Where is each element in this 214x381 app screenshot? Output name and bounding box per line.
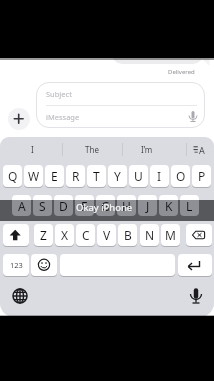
button[interactable] [8, 108, 30, 130]
button[interactable]: U [129, 165, 148, 187]
button[interactable]: P [192, 165, 211, 187]
staticText: Z [40, 227, 47, 243]
button[interactable]: Y [108, 165, 127, 187]
staticText: T [93, 168, 100, 184]
button[interactable] [31, 254, 57, 276]
staticText: G [101, 198, 110, 214]
button[interactable]: Q [3, 165, 22, 187]
button[interactable] [138, 195, 157, 217]
button[interactable] [60, 254, 175, 276]
button[interactable]: I [2, 140, 62, 159]
staticText: W [28, 168, 40, 184]
staticText: I [157, 168, 162, 184]
staticText: U [134, 168, 143, 184]
staticText: I’m [141, 144, 153, 155]
staticText: S [39, 198, 46, 214]
staticText: R [72, 168, 80, 184]
button[interactable] [183, 140, 211, 159]
staticText: Delivered [168, 68, 195, 76]
staticText: Okay iPhone [76, 201, 133, 214]
staticText: B [124, 227, 132, 243]
button[interactable]: Z [34, 224, 53, 246]
button[interactable] [12, 195, 31, 217]
staticText: O [176, 168, 186, 184]
staticText: H [122, 198, 131, 214]
button[interactable]: M [161, 224, 180, 246]
button[interactable]: X [55, 224, 74, 246]
staticText: Subject [46, 89, 72, 99]
button[interactable]: E [45, 165, 64, 187]
staticText: 123 [10, 260, 23, 270]
button[interactable] [178, 254, 212, 276]
button[interactable]: N [140, 224, 159, 246]
staticText: J [146, 198, 150, 214]
button[interactable]: T [87, 165, 106, 187]
button[interactable]: C [76, 224, 95, 246]
staticText: X [61, 227, 69, 243]
button[interactable] [33, 195, 52, 217]
button[interactable] [186, 224, 212, 246]
staticText: A [199, 144, 205, 156]
button[interactable] [75, 195, 94, 217]
staticText: Q [8, 168, 18, 184]
button[interactable] [54, 195, 73, 217]
button[interactable] [3, 224, 29, 246]
button[interactable]: O [171, 165, 190, 187]
staticText: L [186, 198, 193, 214]
button[interactable]: V [97, 224, 116, 246]
button[interactable] [96, 195, 115, 217]
button[interactable]: W [24, 165, 43, 187]
staticText: D [59, 198, 68, 214]
button[interactable] [36, 82, 205, 128]
button[interactable]: R [66, 165, 85, 187]
staticText: M [165, 227, 176, 243]
staticText: E [51, 168, 58, 184]
staticText: K [165, 198, 173, 214]
button[interactable] [8, 284, 32, 308]
button[interactable]: I’m [117, 140, 177, 159]
button[interactable] [180, 195, 199, 217]
staticText: C [82, 227, 90, 243]
button[interactable]: B [118, 224, 137, 246]
staticText: Y [114, 168, 121, 184]
button[interactable]: The [62, 140, 122, 159]
staticText: N [145, 227, 155, 243]
button[interactable] [184, 284, 208, 308]
button[interactable]: I [150, 165, 169, 187]
button[interactable] [117, 195, 136, 217]
staticText: I [31, 144, 34, 155]
button[interactable]: 123 [3, 254, 29, 276]
button[interactable] [159, 195, 178, 217]
staticText: V [103, 227, 111, 243]
button[interactable] [184, 106, 206, 128]
staticText: F [81, 198, 88, 214]
staticText: iMessage [46, 112, 80, 122]
staticText: The [85, 144, 99, 155]
staticText: A [18, 198, 26, 214]
staticText: P [198, 168, 206, 184]
